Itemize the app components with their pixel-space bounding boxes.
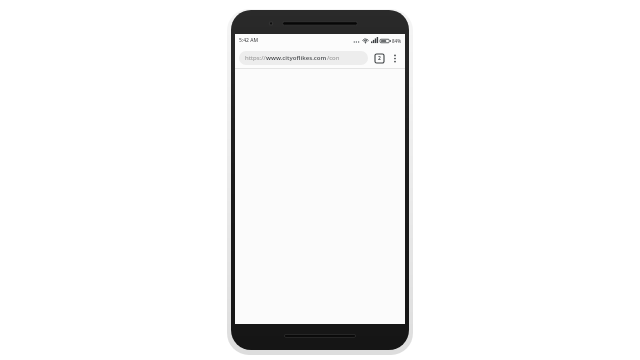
staticText: /con [327, 54, 340, 62]
button[interactable]: More options [388, 51, 402, 65]
button[interactable]: Switch tabs, 2 open tabs [372, 51, 386, 65]
staticText: 84% [392, 38, 401, 44]
staticText: 5:42 AM [239, 37, 259, 44]
button[interactable]: https:// [239, 51, 368, 65]
staticText: www.cityoflikes.com [266, 54, 327, 62]
staticText: https:// [245, 54, 266, 62]
staticText: 2 [378, 55, 381, 62]
